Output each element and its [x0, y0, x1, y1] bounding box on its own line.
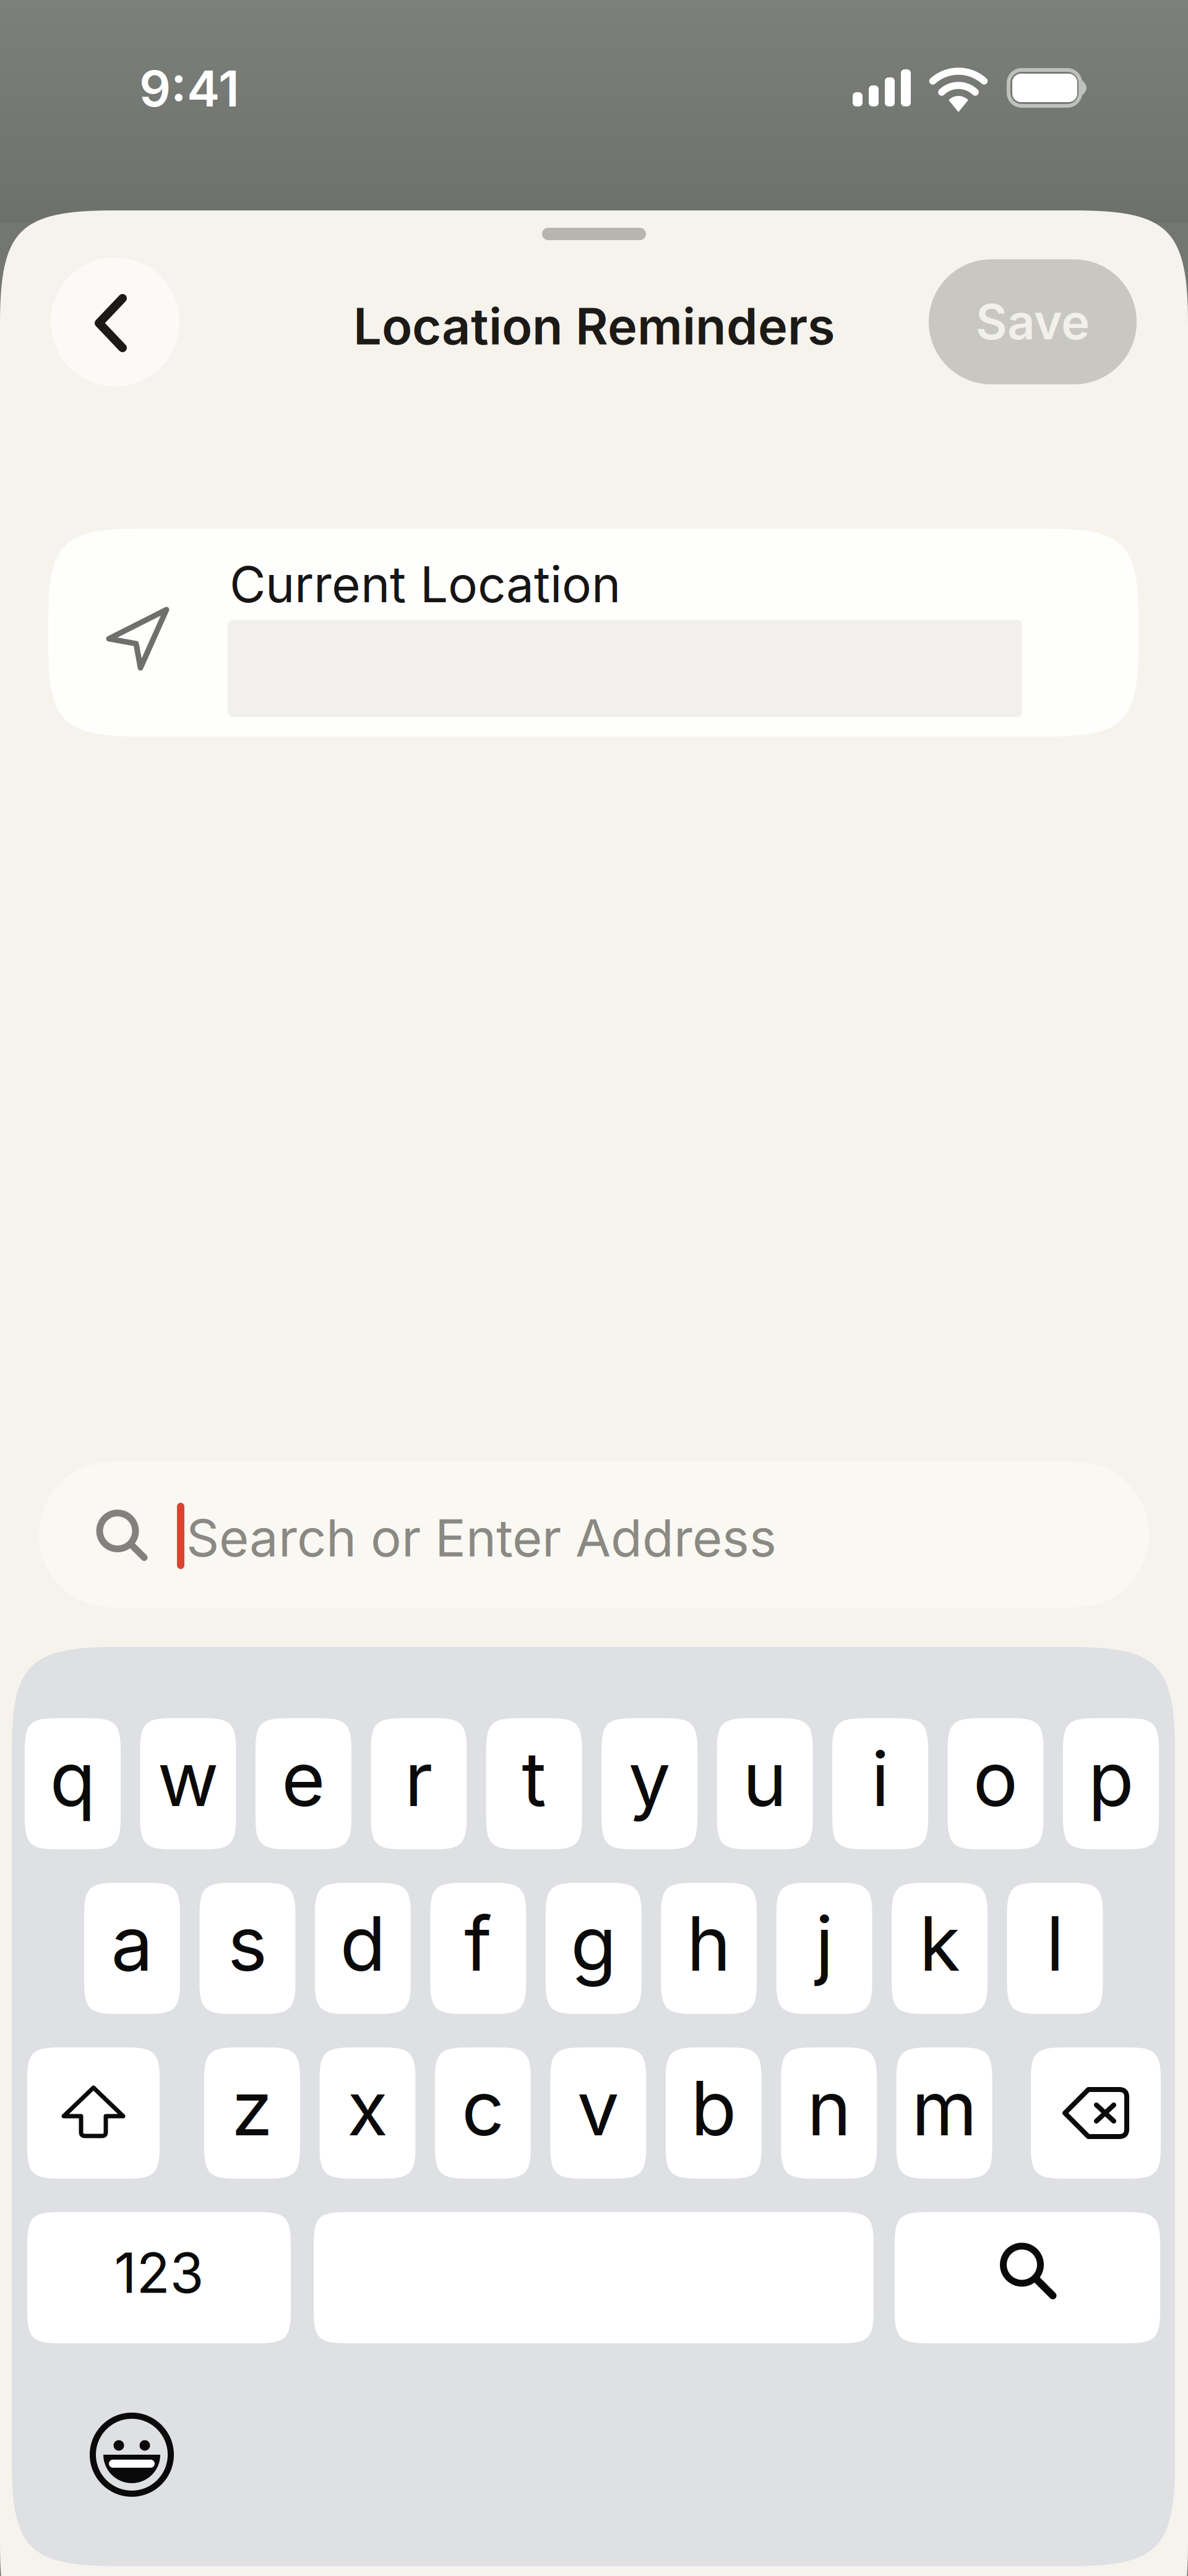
staticText: h — [687, 1898, 731, 1989]
button[interactable]: z — [204, 2047, 300, 2179]
button[interactable]: y — [602, 1718, 697, 1849]
button[interactable]: Delete — [1031, 2047, 1161, 2179]
button[interactable]: t — [486, 1718, 582, 1849]
button[interactable]: g — [546, 1883, 642, 2014]
staticText: z — [231, 2063, 273, 2153]
staticText: Search or Enter Address — [186, 1507, 777, 1569]
button[interactable]: a — [84, 1883, 180, 2014]
button[interactable]: Back — [51, 257, 179, 386]
staticText: a — [111, 1898, 153, 1989]
button[interactable]: Shift — [27, 2047, 160, 2179]
staticText: o — [973, 1734, 1018, 1824]
staticText: Current Location — [230, 554, 621, 614]
staticText: s — [228, 1898, 267, 1989]
button[interactable]: k — [892, 1883, 988, 2014]
staticText: r — [405, 1734, 433, 1824]
staticText: v — [577, 2063, 619, 2153]
staticText: 9:41 — [139, 59, 239, 118]
staticText: y — [628, 1734, 671, 1824]
staticText: u — [743, 1734, 787, 1824]
staticText: t — [522, 1734, 547, 1824]
button[interactable]: q — [25, 1718, 121, 1849]
button[interactable]: Space — [314, 2212, 874, 2343]
staticText: w — [157, 1734, 219, 1824]
button[interactable]: 123 — [27, 2212, 291, 2343]
staticText: l — [1046, 1898, 1064, 1989]
button[interactable]: r — [371, 1718, 467, 1849]
staticText: n — [807, 2063, 851, 2153]
staticText: g — [571, 1898, 616, 1989]
button[interactable]: c — [435, 2047, 531, 2179]
button[interactable]: f — [430, 1883, 526, 2014]
button[interactable]: h — [661, 1883, 757, 2014]
staticText: k — [919, 1898, 960, 1989]
staticText: x — [347, 2063, 388, 2153]
button[interactable]: b — [666, 2047, 762, 2179]
staticText: Location Reminders — [353, 296, 835, 357]
staticText: Save — [976, 293, 1090, 351]
staticText: b — [691, 2063, 736, 2153]
button[interactable]: Save — [929, 259, 1137, 384]
staticText: c — [462, 2063, 504, 2153]
button[interactable]: u — [717, 1718, 813, 1849]
button[interactable]: m — [896, 2047, 992, 2179]
staticText: d — [340, 1898, 386, 1989]
staticText: i — [871, 1734, 889, 1824]
staticText: m — [911, 2063, 977, 2153]
button[interactable]: n — [781, 2047, 877, 2179]
button[interactable]: x — [320, 2047, 415, 2179]
button[interactable]: j — [776, 1883, 872, 2014]
button[interactable]: s — [199, 1883, 295, 2014]
button[interactable]: p — [1063, 1718, 1159, 1849]
button[interactable]: v — [550, 2047, 646, 2179]
button[interactable]: o — [948, 1718, 1044, 1849]
button[interactable]: Search or Enter Address — [39, 1462, 1149, 1608]
button[interactable]: Search — [895, 2212, 1160, 2343]
button[interactable]: Emoji — [88, 2411, 175, 2498]
staticText: j — [815, 1898, 833, 1989]
staticText: q — [50, 1734, 96, 1824]
button[interactable]: Current Location — [48, 529, 1138, 737]
button[interactable]: e — [255, 1718, 351, 1849]
button[interactable]: i — [832, 1718, 928, 1849]
staticText: p — [1088, 1734, 1134, 1824]
button[interactable]: d — [315, 1883, 411, 2014]
button[interactable]: w — [140, 1718, 236, 1849]
button[interactable]: l — [1007, 1883, 1103, 2014]
staticText: 123 — [114, 2239, 204, 2306]
staticText: f — [464, 1898, 492, 1989]
staticText: e — [281, 1734, 325, 1824]
